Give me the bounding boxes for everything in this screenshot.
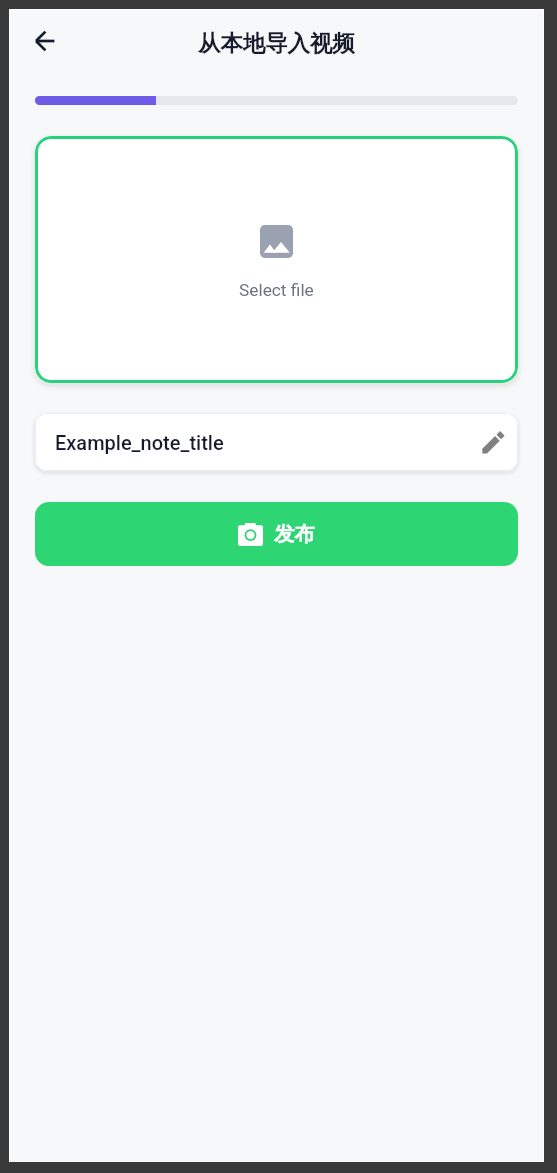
button[interactable]: Select file xyxy=(35,136,518,383)
staticText: Example_note_title xyxy=(55,431,224,454)
staticText: 发布 xyxy=(274,521,315,547)
staticText: 从本地导入视频 xyxy=(198,29,355,57)
staticText: Select file xyxy=(239,280,314,300)
other: Edit xyxy=(481,430,505,454)
button[interactable]: 发布 xyxy=(35,502,518,566)
button[interactable]: Back xyxy=(24,20,66,62)
button[interactable]: Example_note_title xyxy=(35,413,518,471)
